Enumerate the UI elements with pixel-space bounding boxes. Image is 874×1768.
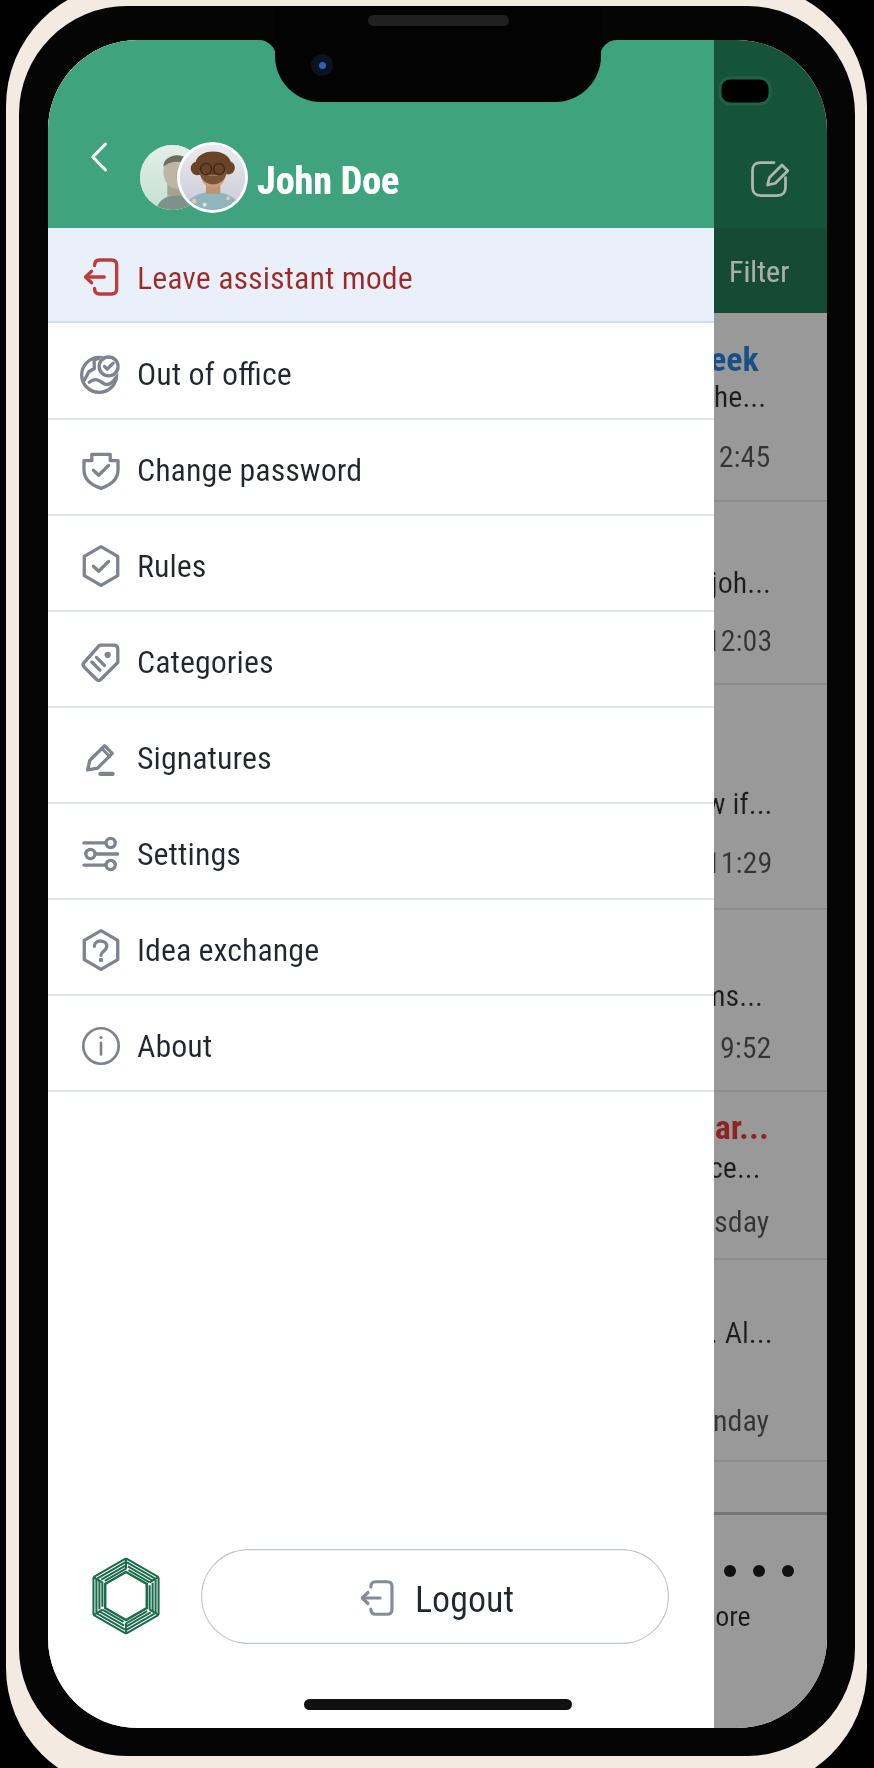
staticText: car...: [699, 1107, 769, 1147]
staticText: esday: [700, 1204, 770, 1239]
button[interactable]: Categories: [48, 612, 714, 706]
staticText: 9:52: [720, 1030, 772, 1065]
staticText: Categories: [137, 643, 274, 681]
staticText: Signatures: [137, 739, 272, 777]
button[interactable]: Rules: [48, 516, 714, 610]
button[interactable]: Logout: [201, 1549, 669, 1644]
staticText: che...: [700, 379, 767, 414]
staticText: w if...: [706, 786, 773, 821]
button[interactable]: About: [48, 996, 714, 1090]
staticText: Filter: [729, 254, 790, 289]
staticText: About: [137, 1027, 213, 1065]
staticText: 11:29: [706, 845, 773, 880]
button[interactable]: Change password: [48, 420, 714, 514]
button[interactable]: Idea exchange: [48, 900, 714, 994]
staticText: Change password: [137, 451, 363, 489]
staticText: John Doe: [257, 159, 400, 204]
staticText: Rules: [137, 547, 207, 585]
staticText: eek: [710, 339, 759, 379]
staticText: t. Al...: [701, 1315, 773, 1350]
staticText: ms...: [703, 978, 763, 1013]
staticText: 12:45: [704, 439, 771, 474]
staticText: onday: [698, 1403, 770, 1438]
button[interactable]: Settings: [48, 804, 714, 898]
staticText: 12:03: [706, 623, 773, 658]
staticText: More: [694, 1600, 751, 1633]
staticText: ce...: [709, 1150, 761, 1185]
button[interactable]: Signatures: [48, 708, 714, 802]
staticText: Logout: [415, 1579, 515, 1621]
staticText: Leave assistant mode: [137, 259, 413, 297]
button[interactable]: Leave assistant mode: [48, 228, 714, 321]
button[interactable]: Out of office: [48, 323, 714, 418]
button[interactable]: Compose: [744, 154, 794, 204]
staticText: joh...: [711, 565, 771, 600]
staticText: Out of office: [137, 355, 292, 393]
staticText: Settings: [137, 835, 241, 873]
button[interactable]: Back: [70, 128, 128, 186]
staticText: Idea exchange: [137, 931, 320, 969]
